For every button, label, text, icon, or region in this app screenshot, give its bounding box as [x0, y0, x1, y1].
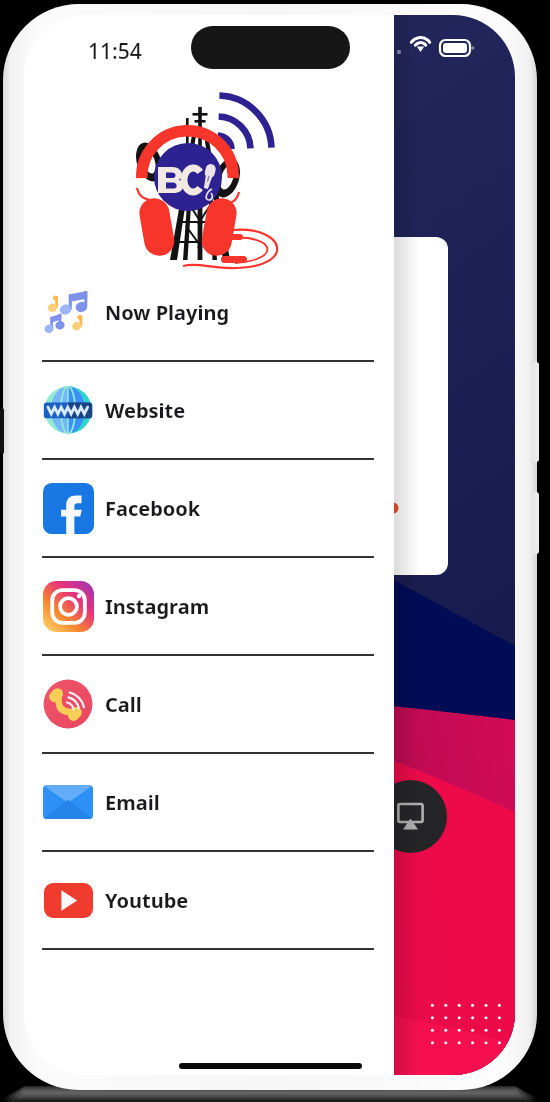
button[interactable]: Now Playing: [24, 264, 394, 362]
button[interactable]: Cast: [374, 780, 447, 853]
button[interactable]: Website: [24, 362, 394, 460]
staticText: Website: [105, 397, 186, 424]
staticText: Call: [105, 691, 142, 718]
staticText: Email: [105, 789, 160, 816]
staticText: 11:54: [88, 37, 142, 66]
button[interactable]: Call: [24, 656, 394, 754]
button[interactable]: Instagram: [24, 558, 394, 656]
staticText: Now Playing: [105, 299, 230, 326]
staticText: Facebook: [105, 495, 201, 522]
staticText: Youtube: [105, 887, 189, 914]
button[interactable]: Facebook: [24, 460, 394, 558]
button[interactable]: Youtube: [24, 852, 394, 950]
staticText: Instagram: [105, 593, 210, 620]
button[interactable]: Email: [24, 754, 394, 852]
